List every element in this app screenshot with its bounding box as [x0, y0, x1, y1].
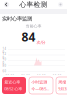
button[interactable]: More	[56, 0, 65, 9]
staticText: 18:00	[53, 74, 62, 78]
staticText: 次/分	[37, 40, 46, 45]
staticText: 120	[2, 52, 6, 58]
button[interactable]: 小时监测	[29, 77, 53, 94]
staticText: 08:52 心率	[4, 86, 22, 91]
staticText: 06:00	[21, 74, 30, 78]
staticText: 实时心率监测	[2, 15, 32, 22]
staticText: 小时监测	[31, 80, 47, 85]
staticText: 00:00	[5, 74, 14, 78]
staticText: 12:00	[37, 74, 46, 78]
staticText: 80	[2, 64, 6, 67]
button[interactable]: Back	[2, 0, 11, 9]
staticText: 当前心率	[25, 24, 41, 29]
staticText: 140	[2, 47, 6, 52]
staticText: 100	[2, 58, 6, 63]
button[interactable]: 周报	[56, 77, 67, 94]
staticText: 9月3日	[58, 86, 67, 91]
staticText: 84	[21, 29, 35, 45]
button[interactable]: 最近心率	[2, 77, 26, 94]
staticText: 心率检测	[19, 0, 47, 9]
staticText: 今—08:5…	[31, 86, 49, 91]
staticText: 周报	[58, 80, 66, 85]
staticText: 60	[2, 69, 6, 73]
staticText: 最近心率	[4, 80, 20, 85]
